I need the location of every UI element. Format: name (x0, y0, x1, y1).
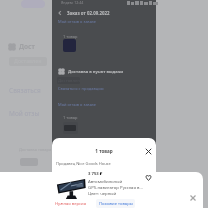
staticText: 1 товар (63, 115, 78, 120)
button[interactable]: Close (143, 146, 154, 157)
staticText: 1 товар (63, 34, 78, 39)
staticText: Цвет: черный (88, 190, 117, 196)
staticText: Связаться с продавцом (58, 86, 104, 91)
staticText: Дост (19, 42, 35, 51)
staticText: Мой отзыв о заказе (58, 19, 97, 24)
staticText: Связаться (9, 86, 41, 95)
staticText: 3 753 ₽ (88, 171, 103, 177)
staticText: Доставка товара (19, 147, 52, 152)
staticText: Нужная версия (55, 201, 87, 207)
staticText: Яндекс 12:44 (61, 0, 84, 5)
staticText: Продавец Nice Goods House (56, 161, 111, 166)
staticText: Доставка в пункт выдачи (68, 69, 124, 75)
staticText: Автомобильный (88, 178, 123, 184)
staticText: Заказ от 02.09.2022 (67, 10, 110, 16)
staticText: Мой отзы (9, 109, 40, 118)
staticText: 1 товар (52, 148, 156, 154)
button[interactable]: Add to favorites (145, 174, 152, 181)
staticText: Мой отзыв о заказе (58, 102, 97, 107)
button[interactable]: Close (188, 193, 198, 203)
staticText: GPS-навигатор Русская в... (88, 184, 143, 190)
button[interactable]: Похожие товары (96, 199, 135, 208)
staticText: Похожие товары (99, 201, 133, 207)
